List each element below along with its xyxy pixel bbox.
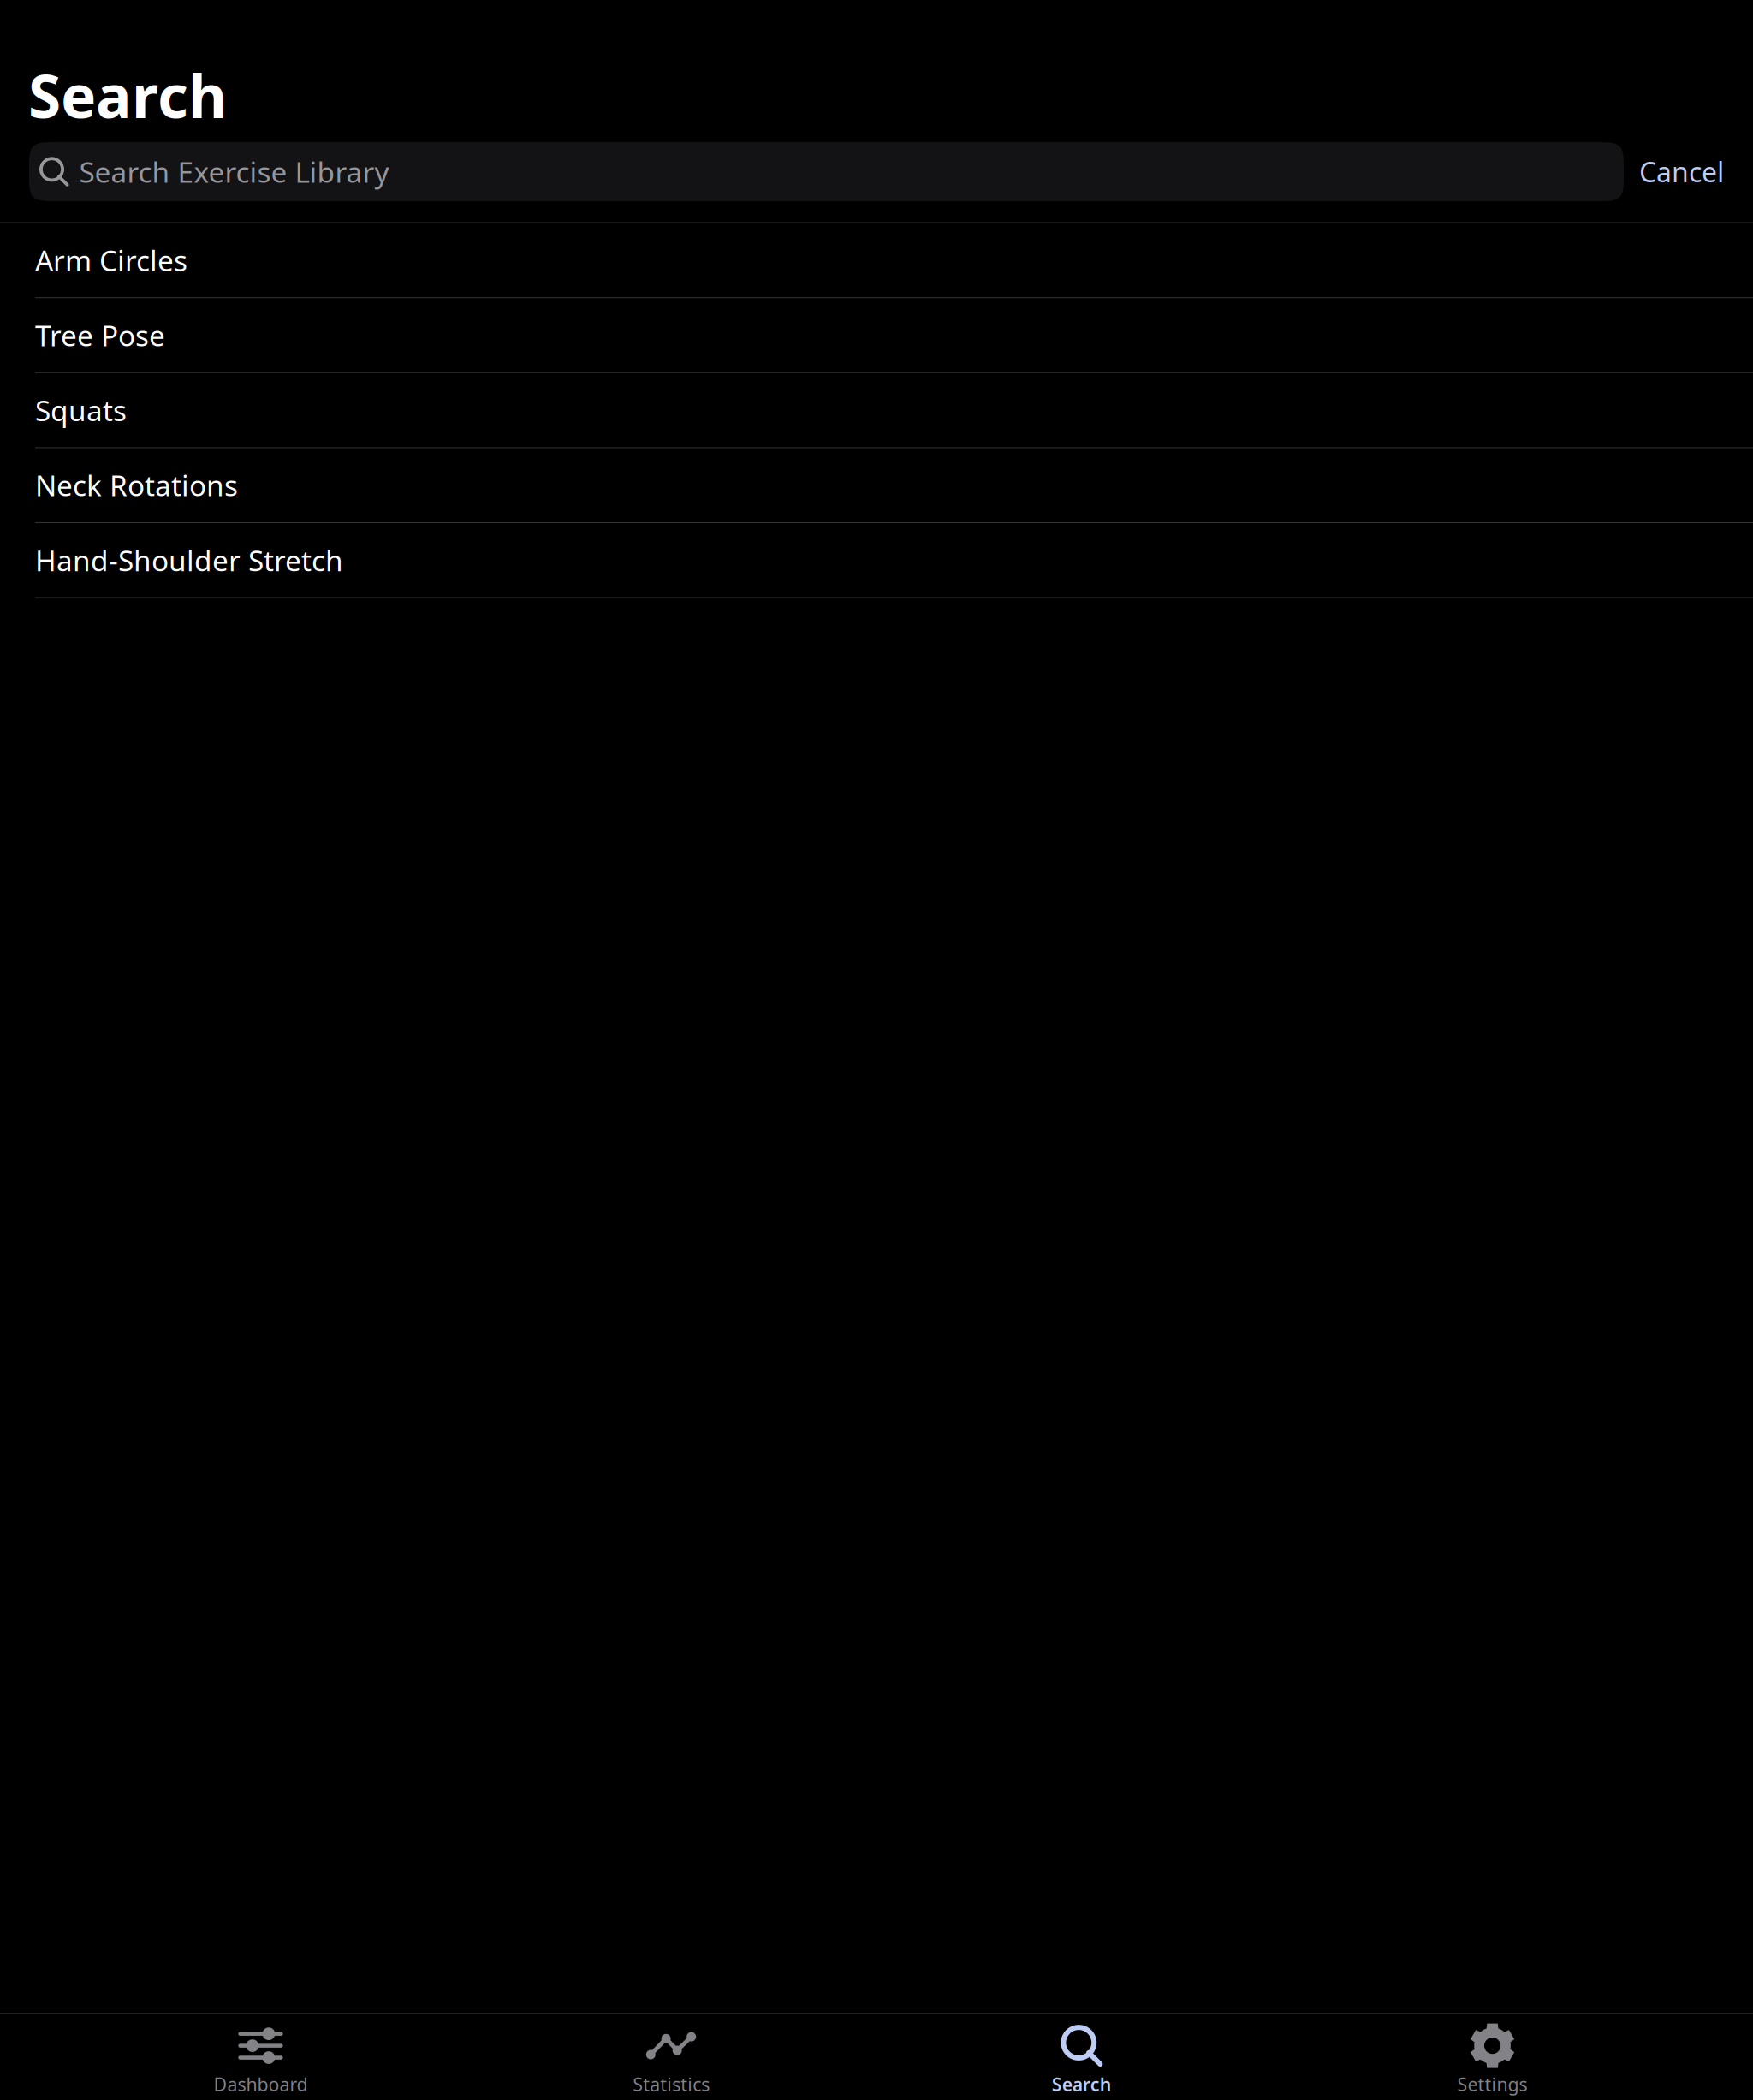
- button[interactable]: Hand-Shoulder Stretch: [0, 523, 1753, 598]
- button[interactable]: Squats: [0, 373, 1753, 448]
- staticText: Arm Circles: [35, 241, 187, 279]
- button[interactable]: Arm Circles: [0, 223, 1753, 298]
- button[interactable]: Neck Rotations: [0, 448, 1753, 523]
- button[interactable]: Search: [876, 2014, 1287, 2100]
- staticText: Search Exercise Library: [79, 153, 389, 191]
- button[interactable]: Search Exercise Library: [29, 142, 1624, 201]
- button[interactable]: Cancel: [1624, 142, 1724, 201]
- staticText: Settings: [1457, 2072, 1527, 2096]
- staticText: Statistics: [633, 2072, 710, 2096]
- staticText: Search: [28, 56, 227, 134]
- button[interactable]: Dashboard: [55, 2014, 466, 2100]
- staticText: Squats: [35, 391, 127, 429]
- staticText: Cancel: [1639, 153, 1724, 190]
- button[interactable]: Settings: [1287, 2014, 1698, 2100]
- staticText: Dashboard: [213, 2072, 308, 2096]
- staticText: Tree Pose: [35, 316, 165, 354]
- staticText: Neck Rotations: [35, 466, 238, 504]
- staticText: Search: [1052, 2072, 1112, 2096]
- staticText: Hand-Shoulder Stretch: [35, 541, 343, 579]
- button[interactable]: Statistics: [466, 2014, 876, 2100]
- button[interactable]: Tree Pose: [0, 298, 1753, 373]
